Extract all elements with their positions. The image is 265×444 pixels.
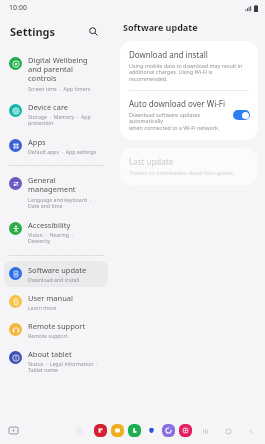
button[interactable]: Apps xyxy=(4,133,108,159)
staticText: Default apps · App settings xyxy=(28,148,97,155)
button[interactable]: Accessibility xyxy=(4,216,108,249)
staticText: Accessibility xyxy=(28,220,71,230)
button[interactable]: Digital Wellbeing and parental controls xyxy=(4,51,108,96)
staticText: Learn more xyxy=(28,304,57,311)
staticText: Digital Wellbeing and parental controls xyxy=(28,55,88,84)
button[interactable]: App 2 xyxy=(128,424,141,437)
staticText: Screen time · App timers xyxy=(28,85,91,92)
button[interactable]: Auto download over Wi-Fi xyxy=(120,91,258,140)
button[interactable]: App 1 xyxy=(111,424,124,437)
button[interactable]: Remote support xyxy=(4,317,108,343)
button[interactable]: Download and install xyxy=(120,41,258,90)
button[interactable]: Device care xyxy=(4,98,108,131)
button[interactable]: Recent apps panel xyxy=(7,424,20,437)
button[interactable]: App 4 xyxy=(162,424,175,437)
staticText: Storage · Memory · App protection xyxy=(28,113,91,127)
button[interactable]: General management xyxy=(4,171,108,214)
button[interactable]: Last update xyxy=(120,148,258,185)
staticText: About tablet xyxy=(28,349,72,359)
staticText: Software update xyxy=(123,21,198,33)
staticText: Apps xyxy=(28,137,46,147)
staticText: Remote support xyxy=(28,332,68,339)
staticText: Software update xyxy=(28,265,87,275)
button[interactable]: Back xyxy=(245,425,257,437)
staticText: Auto download over Wi-Fi xyxy=(129,98,226,109)
button[interactable]: Search xyxy=(84,22,102,40)
button[interactable]: Recents xyxy=(199,425,211,437)
button[interactable]: Auto download over Wi-Fi toggle xyxy=(233,110,250,120)
staticText: Device care xyxy=(28,102,69,112)
staticText: Download software updates automatically … xyxy=(129,111,228,132)
staticText: Vision · Hearing · Dexterity xyxy=(28,231,74,245)
button[interactable]: About tablet xyxy=(4,345,108,378)
staticText: General management xyxy=(28,175,76,195)
staticText: Settings xyxy=(10,24,56,39)
staticText: Last update xyxy=(129,156,174,167)
button[interactable]: Software update xyxy=(4,261,108,287)
staticText: Status · Legal information · Tablet name xyxy=(28,360,98,374)
staticText: Language and keyboard · Date and time xyxy=(28,196,92,210)
staticText: Remote support xyxy=(28,321,86,331)
button[interactable]: All apps xyxy=(73,425,85,437)
button[interactable]: App 5 xyxy=(179,424,192,437)
button[interactable]: App 0 xyxy=(94,424,107,437)
staticText: User manual xyxy=(28,293,73,303)
staticText: Download and install xyxy=(28,276,80,283)
button[interactable]: Home xyxy=(222,425,234,437)
staticText: Using mobile data to download may result… xyxy=(129,62,249,83)
button[interactable]: User manual xyxy=(4,289,108,315)
staticText: Download and install xyxy=(129,49,208,60)
staticText: There's no information about this update… xyxy=(129,169,235,176)
button[interactable]: App 3 xyxy=(145,424,158,437)
staticText: 10:00 xyxy=(9,3,27,13)
